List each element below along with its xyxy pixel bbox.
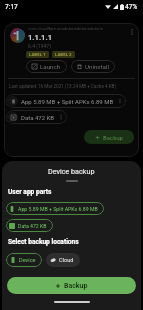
staticText: Last updated: 16 Mar 2021 (13.24 MB + Ca… [9, 84, 117, 89]
staticText: 47% [125, 3, 138, 11]
button[interactable]: Backup [7, 277, 136, 294]
button[interactable]: App 5.89 MB + Split APKs 6.89 MB [6, 202, 104, 215]
button[interactable]: LABEL 1 [26, 51, 49, 58]
button[interactable]: Launch [26, 60, 67, 73]
staticText: Device backup [48, 167, 95, 175]
button[interactable]: Backup [84, 130, 134, 144]
staticText: User app parts [8, 188, 52, 196]
staticText: 1.1.1.1 [28, 33, 53, 42]
button[interactable]: Data 472 KB [6, 219, 53, 232]
staticText: App 5.89 MB + Split APKs 6.89 MB [21, 98, 114, 105]
staticText: Cloud [59, 257, 74, 264]
staticText: Device [19, 257, 36, 264]
button[interactable]: More options [126, 26, 138, 38]
button[interactable]: Uninstall [71, 60, 115, 73]
staticText: com.cloudflare.onedotonedotonedotone [28, 26, 103, 31]
staticText: Data 472 KB [18, 223, 47, 229]
staticText: 6.4 (1947) [28, 43, 51, 49]
staticText: Data 472 KB [21, 114, 55, 121]
staticText: LABEL 2 [55, 52, 72, 57]
staticText: Uninstall [85, 63, 109, 70]
button[interactable]: App 5.89 MB + Split APKs 6.89 MB [6, 94, 126, 108]
button[interactable]: LABEL 2 [52, 51, 75, 58]
staticText: App 5.89 MB + Split APKs 6.89 MB [18, 206, 98, 212]
staticText: Backup [103, 134, 123, 141]
button[interactable]: Cloud [46, 253, 80, 267]
button[interactable]: Device [6, 253, 42, 267]
button[interactable]: Data 472 KB [6, 110, 67, 124]
staticText: 7:17 [5, 3, 18, 11]
staticText: Select backup locations [8, 238, 79, 246]
staticText: Launch [40, 63, 61, 70]
staticText: Backup [64, 282, 88, 290]
staticText: LABEL 1 [29, 52, 46, 57]
